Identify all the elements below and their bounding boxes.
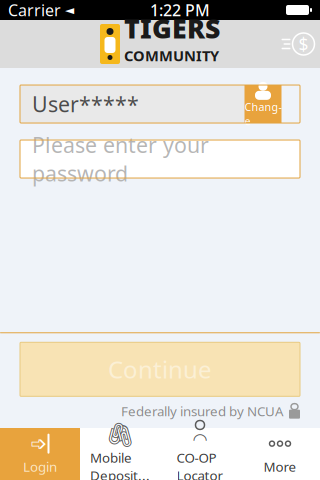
staticText: Please enter your password [32,131,209,187]
staticText: Continue [108,353,212,385]
button[interactable]: Change user [244,85,281,123]
staticText: More [263,458,296,475]
button[interactable]: Please enter your password [20,140,300,178]
button[interactable]: Continue [20,342,300,396]
staticText: 🖇 [105,421,135,448]
button[interactable]: 🖇 [80,428,160,480]
staticText: $ [298,32,308,55]
staticText: Mobile Deposit... [90,449,150,480]
staticText: 1:22 PM [150,0,210,21]
staticText: Change [244,100,281,128]
staticText: CO-OP Locator [176,449,223,480]
button[interactable]: Rates [276,22,320,66]
staticText: CREDIT UNION [124,65,193,78]
staticText: User***** [32,90,139,118]
button[interactable]: ◠ [160,428,240,480]
staticText: Federally insured by NCUA [121,402,284,420]
staticText: COMMUNITY [124,46,219,65]
staticText: ➩ [30,432,47,455]
staticText: TIGERS [124,10,220,46]
button[interactable]: More [240,428,320,480]
staticText: ◠ [192,429,207,449]
staticText: Carrier [8,0,61,21]
staticText: Login [23,458,57,475]
button[interactable]: ➩ [0,428,80,480]
staticText: ◄ [61,3,74,17]
